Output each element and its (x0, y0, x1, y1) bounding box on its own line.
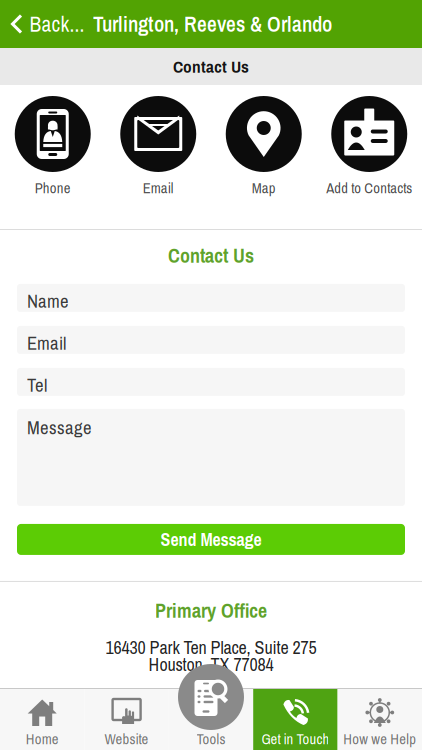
staticText: Tel (27, 372, 47, 397)
button[interactable]: Phone (0, 85, 105, 229)
staticText: Phone (35, 178, 71, 198)
staticText: Email (143, 178, 174, 198)
button[interactable]: Name (17, 284, 405, 312)
button[interactable]: Get in Touch (253, 689, 338, 750)
staticText: Website (105, 729, 149, 749)
button[interactable]: Tel (17, 368, 405, 396)
button[interactable]: Map (211, 85, 316, 229)
staticText: Message (27, 415, 92, 440)
staticText: Back... (29, 10, 84, 38)
staticText: How we Help (343, 729, 416, 749)
button[interactable]: Tools (178, 664, 244, 730)
staticText: Home (26, 729, 59, 749)
staticText: Turlington, Reeves & Orlando (93, 10, 332, 38)
staticText: Primary Office (155, 597, 267, 624)
staticText: Send Message (160, 527, 261, 551)
button[interactable]: Email (17, 326, 405, 354)
staticText: Map (252, 178, 276, 198)
staticText: Tools (196, 729, 225, 749)
button[interactable]: Send Message (17, 524, 405, 555)
button[interactable]: Message (17, 409, 405, 506)
button[interactable]: Back... (0, 0, 84, 50)
button[interactable]: Home (0, 689, 84, 750)
button[interactable]: Email (105, 85, 211, 229)
button[interactable]: Add to Contacts (316, 85, 422, 229)
staticText: Houston, TX 77084 (148, 652, 273, 676)
staticText: Name (27, 288, 69, 313)
button[interactable]: Website (84, 689, 169, 750)
button[interactable]: Tools (169, 689, 253, 750)
staticText: Contact Us (173, 55, 249, 78)
button[interactable]: How we Help (338, 689, 422, 750)
staticText: 16430 Park Ten Place, Suite 275 (105, 635, 316, 659)
staticText: Get in Touch (261, 729, 329, 749)
staticText: Contact Us (168, 242, 254, 269)
staticText: Email (27, 330, 66, 355)
staticText: Add to Contacts (326, 178, 412, 198)
